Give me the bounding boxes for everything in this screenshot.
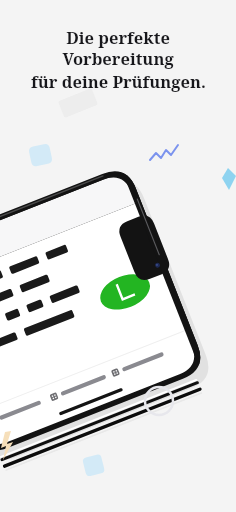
staticText: für deine Prüfungen.: [31, 70, 206, 92]
button[interactable]: App Vorschau: [0, 0, 236, 512]
staticText: Die perfekte Vorbereitung: [10, 26, 226, 70]
